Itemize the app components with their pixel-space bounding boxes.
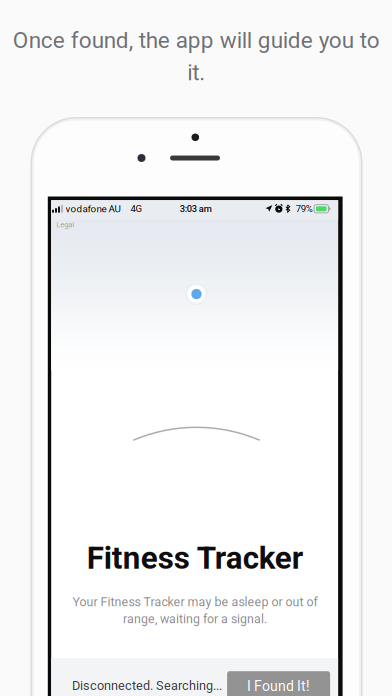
- staticText: 79%: [296, 203, 313, 214]
- staticText: 3:03 am: [180, 203, 212, 214]
- staticText: Disconnected. Searching...: [72, 678, 222, 693]
- staticText: I Found It!: [247, 678, 310, 694]
- staticText: vodafone AU: [65, 203, 120, 215]
- button[interactable]: I Found It!: [227, 671, 330, 696]
- staticText: Your Fitness Tracker may be asleep or ou…: [72, 595, 317, 626]
- button[interactable]: Legal: [54, 218, 76, 231]
- staticText: Fitness Tracker: [87, 540, 303, 576]
- staticText: Once found, the app will guide you to it…: [12, 27, 379, 86]
- staticText: Legal: [56, 220, 74, 229]
- staticText: 4G: [130, 203, 142, 214]
